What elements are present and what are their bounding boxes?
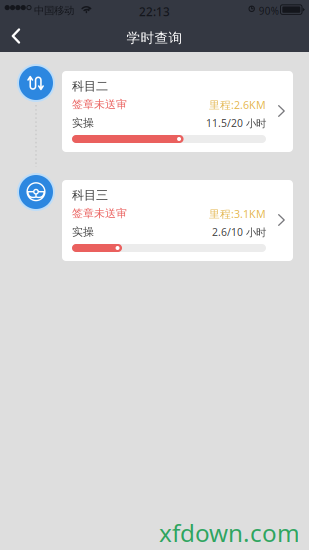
staticText: 学时查询 (126, 29, 182, 47)
staticText: 里程:3.1KM (209, 206, 266, 221)
button[interactable]: 科目二 (62, 71, 293, 152)
staticText: 科目三 (72, 187, 108, 203)
staticText: 2.6/10 小时 (212, 225, 266, 239)
staticText: 90% (259, 4, 279, 18)
staticText: 里程:2.6KM (209, 97, 266, 112)
button[interactable]: Back (0, 20, 32, 52)
staticText: 签章未送审 (72, 206, 127, 220)
staticText: 22:13 (139, 4, 170, 20)
staticText: 科目二 (72, 78, 108, 94)
button[interactable]: 科目三 (62, 180, 293, 261)
staticText: 签章未送审 (72, 97, 127, 111)
staticText: 中国移动 (34, 4, 74, 17)
staticText: xfdown.com (159, 516, 300, 549)
staticText: 实操 (72, 116, 94, 130)
staticText: 实操 (72, 225, 94, 239)
staticText: 11.5/20 小时 (206, 116, 266, 130)
